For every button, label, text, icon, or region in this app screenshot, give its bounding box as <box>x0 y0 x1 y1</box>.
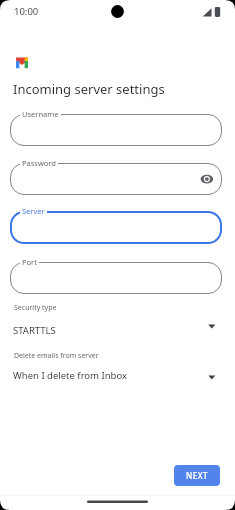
button[interactable] <box>10 163 222 195</box>
button[interactable]: NEXT <box>174 465 220 486</box>
button[interactable] <box>200 173 214 185</box>
button[interactable]: Delete emails from server <box>0 348 235 388</box>
staticText: Incoming server settings <box>13 80 165 98</box>
staticText: NEXT <box>186 470 209 481</box>
staticText: Username <box>22 109 59 119</box>
staticText: When I delete from Inbox <box>13 369 127 382</box>
staticText: Delete emails from server <box>14 351 99 361</box>
staticText: Port <box>22 257 37 267</box>
staticText: Security type <box>14 303 57 313</box>
button[interactable] <box>10 211 222 244</box>
staticText: 10:00 <box>14 5 39 18</box>
button[interactable]: Security type <box>0 300 235 338</box>
staticText: Server <box>22 206 45 216</box>
staticText: STARTTLS <box>13 324 56 337</box>
button[interactable] <box>10 262 222 294</box>
button[interactable] <box>10 114 222 146</box>
staticText: Password <box>22 158 56 168</box>
